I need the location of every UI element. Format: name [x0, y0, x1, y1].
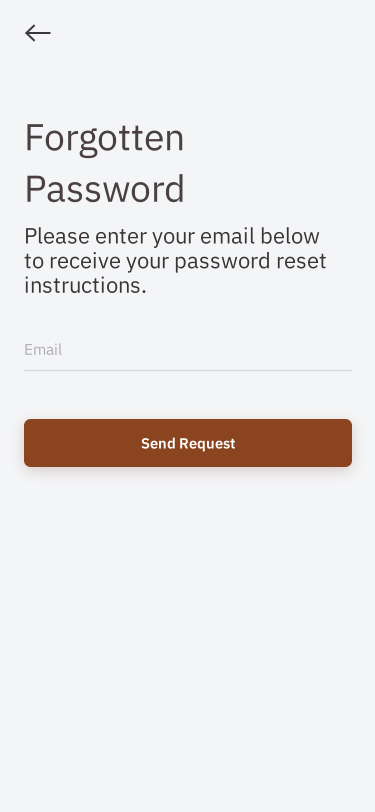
staticText: Email: [24, 339, 62, 359]
button[interactable]: Back: [16, 11, 60, 55]
button[interactable]: Send Request: [24, 419, 352, 467]
staticText: Send Request: [141, 433, 235, 453]
staticText: Please enter your email below to receive…: [24, 221, 327, 299]
staticText: Forgotten Password: [24, 112, 186, 212]
